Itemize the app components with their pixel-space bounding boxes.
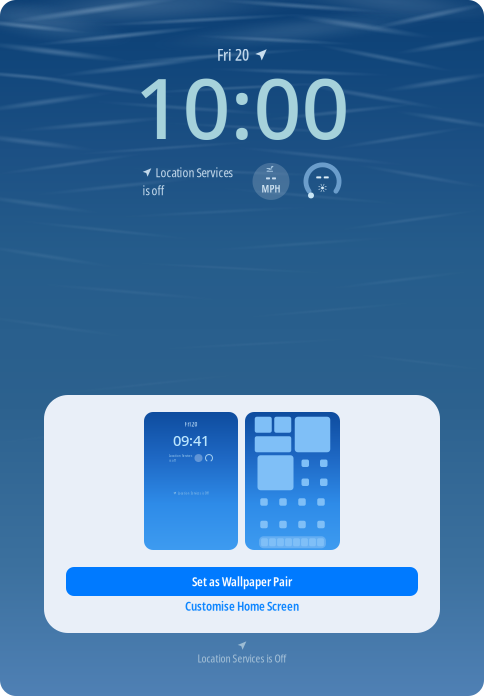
staticText: Customise Home Screen [185,597,299,615]
staticText: Fri 20 [184,420,197,428]
staticText: Set as Wallpaper Pair [192,573,292,590]
button[interactable]: Set as Wallpaper Pair [66,567,418,596]
staticText: Fri 20 [217,44,249,65]
staticText: 09:41 [173,430,209,450]
staticText: is off [142,182,164,199]
staticText: 10:00 [134,49,349,164]
button[interactable]: Customise Home Screen [66,596,418,616]
staticText: Location Services is Off [178,491,209,495]
button[interactable]: Lock Screen preview [144,412,238,550]
button[interactable]: Home Screen preview [245,412,340,550]
staticText: MPH [261,182,280,195]
staticText: Location Services [155,164,232,181]
staticText: Location Services is Off [197,651,286,666]
staticText: Location Services [169,453,192,458]
staticText: is off [169,458,176,463]
